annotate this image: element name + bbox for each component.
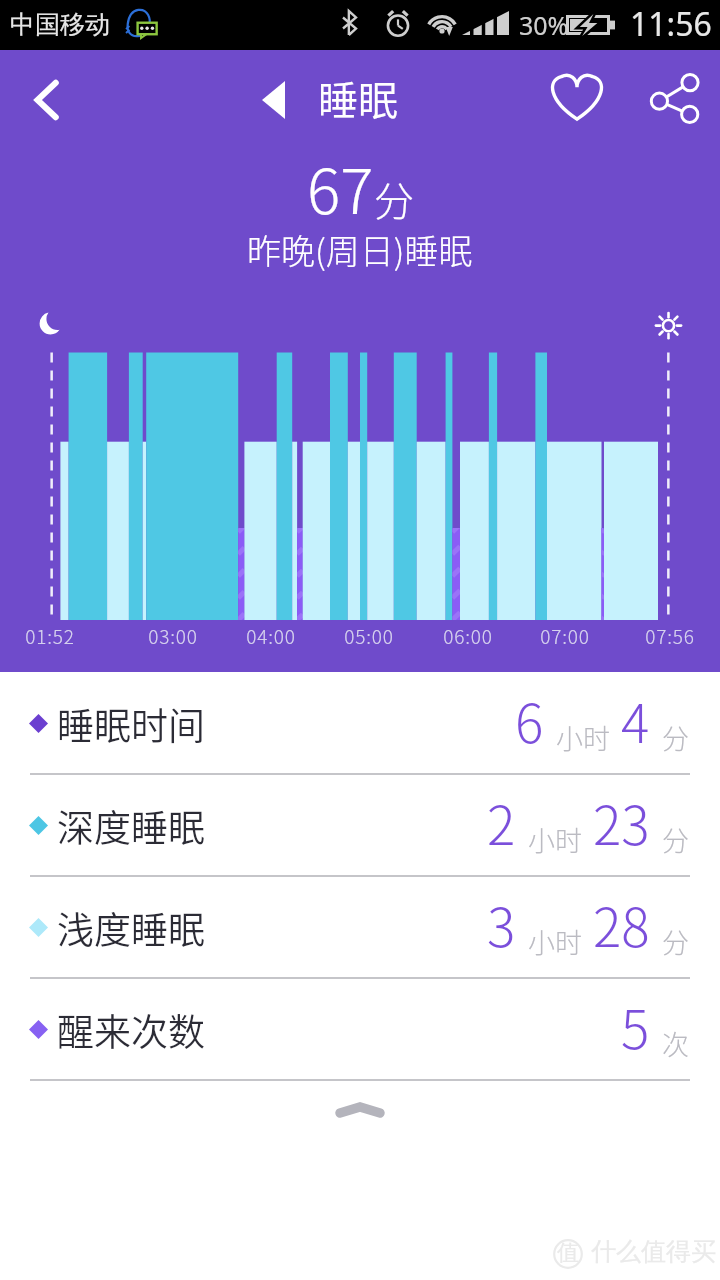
staticText: 30% — [519, 8, 569, 42]
button[interactable]: Back — [0, 57, 86, 143]
staticText: 04:00 — [221, 622, 321, 650]
staticText: 睡眠时间 — [57, 697, 205, 751]
staticText: 小时 — [556, 718, 610, 757]
button[interactable]: 浅度睡眠 — [0, 877, 720, 979]
staticText: 01:52 — [0, 622, 100, 650]
staticText: 小时 — [528, 922, 582, 961]
staticText: 睡眠 — [318, 69, 398, 127]
staticText: 5 — [621, 988, 650, 1065]
staticText: 07:00 — [515, 622, 615, 650]
staticText: 07:56 — [620, 622, 720, 650]
staticText: 11:56 — [630, 2, 712, 46]
staticText: 3 — [487, 886, 516, 963]
staticText: 分 — [662, 718, 689, 757]
staticText: 小时 — [528, 820, 582, 859]
button[interactable]: 深度睡眠 — [0, 775, 720, 877]
staticText: 次 — [662, 1024, 689, 1063]
staticText: 值 — [557, 1239, 579, 1267]
staticText: 分 — [374, 170, 414, 228]
staticText: 4 — [621, 682, 650, 759]
staticText: 什么值得买 — [591, 1236, 716, 1267]
staticText: 深度睡眠 — [57, 799, 205, 853]
staticText: 23 — [593, 784, 650, 861]
button[interactable]: 醒来次数 — [0, 979, 720, 1081]
staticText: 05:00 — [319, 622, 419, 650]
staticText: 28 — [593, 886, 650, 963]
button[interactable]: Share — [648, 70, 708, 130]
staticText: 醒来次数 — [57, 1003, 205, 1057]
staticText: 67 — [307, 142, 374, 232]
button[interactable]: Favorite — [545, 68, 609, 132]
staticText: 6 — [515, 682, 544, 759]
staticText: 分 — [662, 922, 689, 961]
staticText: 06:00 — [418, 622, 518, 650]
staticText: 中国移动 — [10, 9, 110, 40]
staticText: 03:00 — [123, 622, 223, 650]
staticText: 昨晚(周日)睡眠 — [247, 225, 473, 274]
button[interactable]: 睡眠时间 — [0, 673, 720, 775]
staticText: 浅度睡眠 — [57, 901, 205, 955]
button[interactable]: Collapse — [335, 1102, 385, 1120]
staticText: 2 — [487, 784, 516, 861]
staticText: 分 — [662, 820, 689, 859]
